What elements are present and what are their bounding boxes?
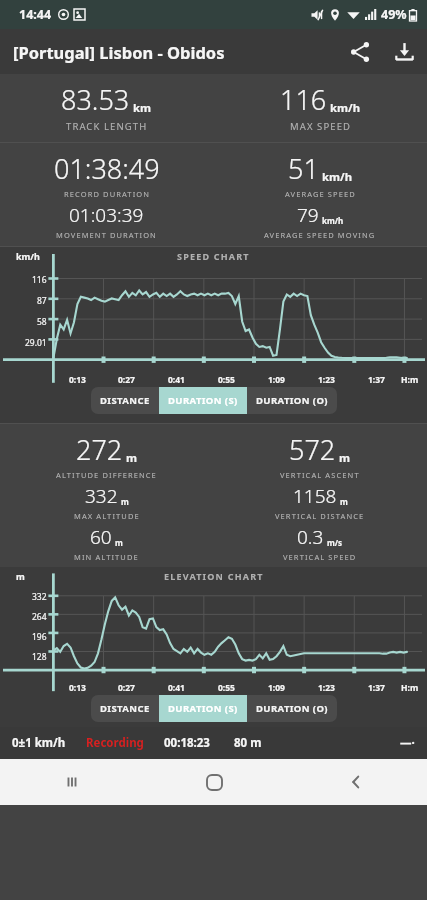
button[interactable]: DURATION (S) <box>159 387 247 414</box>
staticText: RECORD DURATION <box>64 189 151 199</box>
button[interactable]: Download <box>382 29 427 74</box>
staticText: 14:44 <box>19 6 52 23</box>
staticText: [Portugal] Lisbon - Obidos <box>13 41 225 63</box>
staticText: H:m <box>401 682 419 694</box>
staticText: AVERAGE SPEED MOVING <box>264 230 376 240</box>
staticText: 51 <box>288 150 319 187</box>
staticText: DURATION (S) <box>168 702 238 715</box>
staticText: 0±1 km/h <box>12 735 66 751</box>
staticText: 196 <box>32 631 47 643</box>
staticText: 0:55 <box>218 682 235 694</box>
staticText: 0:41 <box>168 682 185 694</box>
staticText: 128 <box>32 651 47 663</box>
staticText: 264 <box>32 611 47 623</box>
staticText: ELEVATION CHART <box>164 570 264 582</box>
staticText: 0:41 <box>168 374 185 386</box>
staticText: km/h <box>322 169 353 184</box>
staticText: DISTANCE <box>100 702 150 715</box>
staticText: ALTITUDE DIFFERENCE <box>56 470 157 480</box>
staticText: 80 m <box>234 735 262 751</box>
staticText: m <box>126 450 138 465</box>
button[interactable]: DISTANCE <box>91 695 159 722</box>
staticText: DURATION (O) <box>256 394 328 407</box>
staticText: 58 <box>37 316 47 328</box>
staticText: 272 <box>76 431 123 468</box>
staticText: 87 <box>37 295 47 307</box>
staticText: MIN ALTITUDE <box>74 552 139 562</box>
staticText: 79 <box>297 202 319 228</box>
staticText: Recording <box>86 735 144 751</box>
staticText: 49% <box>381 6 407 23</box>
staticText: 29.01 <box>25 337 47 349</box>
button[interactable]: DURATION (O) <box>247 695 337 722</box>
staticText: VERTICAL SPEED <box>283 552 357 562</box>
staticText: 01:03:39 <box>69 202 144 228</box>
staticText: 1:37 <box>368 682 385 694</box>
staticText: m <box>121 496 129 507</box>
staticText: 0:27 <box>118 374 135 386</box>
staticText: 332 <box>32 591 47 603</box>
button[interactable]: Home <box>143 759 285 805</box>
staticText: TRACK LENGTH <box>66 120 148 133</box>
staticText: m <box>16 570 25 582</box>
staticText: VERTICAL ASCENT <box>280 470 360 480</box>
button[interactable]: DISTANCE <box>91 387 159 414</box>
staticText: 1158 <box>293 483 337 509</box>
staticText: 116 <box>32 274 47 286</box>
staticText: 00:18:23 <box>164 735 210 751</box>
staticText: 1:23 <box>318 374 335 386</box>
staticText: DISTANCE <box>100 394 150 407</box>
staticText: m <box>339 450 351 465</box>
staticText: 60 <box>90 524 112 550</box>
staticText: 0:13 <box>69 374 86 386</box>
staticText: VERTICAL DISTANCE <box>275 511 365 521</box>
staticText: MOVEMENT DURATION <box>56 230 157 240</box>
button[interactable]: Recents <box>0 759 143 805</box>
staticText: SPEED CHART <box>177 250 250 262</box>
staticText: 0:13 <box>69 682 86 694</box>
staticText: 1:09 <box>268 374 285 386</box>
staticText: 01:38:49 <box>54 150 160 187</box>
button[interactable]: Share <box>337 29 382 74</box>
staticText: 116 <box>280 81 327 118</box>
staticText: DURATION (O) <box>256 702 328 715</box>
button[interactable]: DURATION (S) <box>159 695 247 722</box>
staticText: km/h <box>322 215 344 226</box>
button[interactable]: Back <box>285 759 427 805</box>
staticText: 332 <box>85 483 118 509</box>
staticText: 0.3 <box>297 524 324 550</box>
staticText: 1:37 <box>368 374 385 386</box>
staticText: 572 <box>289 431 336 468</box>
staticText: m/s <box>327 537 343 548</box>
staticText: H:m <box>401 374 419 386</box>
staticText: 0:27 <box>118 682 135 694</box>
staticText: MAX SPEED <box>290 120 352 133</box>
button[interactable]: DURATION (O) <box>247 387 337 414</box>
staticText: km/h <box>330 100 361 115</box>
staticText: DURATION (S) <box>168 394 238 407</box>
staticText: 1:09 <box>268 682 285 694</box>
staticText: km/h <box>16 250 40 262</box>
staticText: 0:55 <box>218 374 235 386</box>
staticText: 1:23 <box>318 682 335 694</box>
staticText: m <box>115 537 123 548</box>
staticText: AVERAGE SPEED <box>285 189 356 199</box>
staticText: —· <box>400 735 415 751</box>
staticText: MAX ALTITUDE <box>74 511 140 521</box>
staticText: m <box>340 496 348 507</box>
staticText: km <box>133 100 152 115</box>
staticText: 83.53 <box>61 81 130 118</box>
